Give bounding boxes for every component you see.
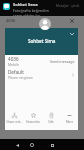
staticText: Default (8, 69, 24, 75)
button[interactable]: Expand (68, 30, 76, 38)
staticText: Fotoğrafta beğendim (13, 8, 49, 13)
staticText: 4036 (6, 18, 16, 23)
button[interactable]: Favourites (24, 106, 42, 130)
button[interactable]: Back (13, 141, 21, 149)
button[interactable]: Edit (42, 106, 60, 130)
button[interactable]: Recents (48, 141, 56, 149)
staticText: More (66, 120, 73, 124)
button[interactable]: Share cont... (5, 106, 24, 130)
staticText: Edit (48, 120, 54, 124)
staticText: Mobile (8, 62, 19, 67)
staticText: Share cont... (6, 120, 23, 124)
staticText: senin aldığın bu (13, 13, 40, 16)
button[interactable]: Sohbet Sena (0, 0, 84, 16)
staticText: Favourites (26, 120, 40, 124)
button[interactable]: 4036 (5, 55, 78, 68)
button[interactable]: Close (67, 16, 76, 25)
staticText: Sohbet Sima (28, 38, 56, 44)
staticText: Mesajlar · şimdi (56, 4, 80, 8)
staticText: Phone ringtone (8, 75, 33, 80)
button[interactable]: Default (5, 68, 78, 81)
staticText: Send message (50, 59, 75, 64)
button[interactable]: Home (28, 141, 36, 149)
button[interactable]: More (60, 106, 78, 130)
staticText: 4036 (8, 56, 19, 62)
staticText: Sohbet Sena (13, 2, 38, 7)
